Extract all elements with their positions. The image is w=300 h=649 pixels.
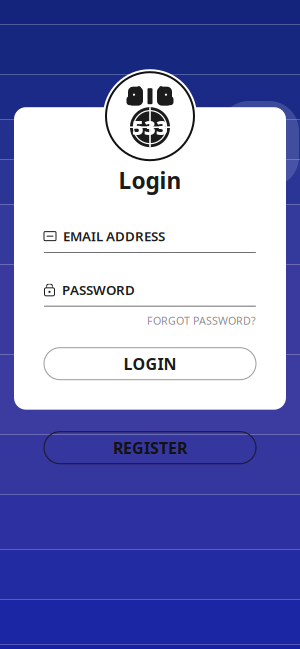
- button[interactable]: FORGOT PASSWORD?: [14, 314, 286, 328]
- staticText: REGISTER: [113, 437, 187, 458]
- staticText: EMAIL ADDRESS: [63, 227, 165, 245]
- button[interactable]: LOGIN: [44, 348, 256, 380]
- staticText: LOGIN: [123, 353, 176, 374]
- staticText: 533: [132, 114, 168, 140]
- staticText: Login: [118, 165, 181, 195]
- staticText: FORGOT PASSWORD?: [147, 314, 256, 328]
- button[interactable]: REGISTER: [44, 432, 256, 464]
- staticText: PASSWORD: [62, 281, 135, 299]
